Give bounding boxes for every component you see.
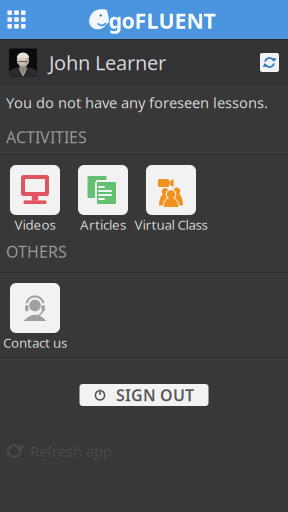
staticText: Contact us: [3, 334, 67, 351]
staticText: SIGN OUT: [116, 384, 194, 406]
staticText: Refresh app: [30, 441, 112, 461]
staticText: Videos: [14, 216, 55, 233]
button[interactable]: Refresh: [260, 53, 279, 72]
button[interactable]: Refresh app: [0, 438, 288, 464]
button[interactable]: Contact us: [1, 283, 69, 349]
staticText: John Learner: [49, 49, 166, 76]
staticText: Articles: [80, 216, 126, 233]
button[interactable]: Menu: [0, 0, 33, 39]
button[interactable]: Virtual Class: [137, 165, 205, 231]
staticText: ACTIVITIES: [6, 126, 87, 148]
button[interactable]: SIGN OUT: [79, 384, 208, 406]
staticText: You do not have any foreseen lessons.: [6, 93, 268, 112]
button[interactable]: Videos: [1, 165, 69, 231]
staticText: Virtual Class: [134, 216, 207, 233]
button[interactable]: Articles: [69, 165, 137, 231]
staticText: goFLUENT: [108, 6, 215, 35]
staticText: OTHERS: [6, 241, 67, 262]
